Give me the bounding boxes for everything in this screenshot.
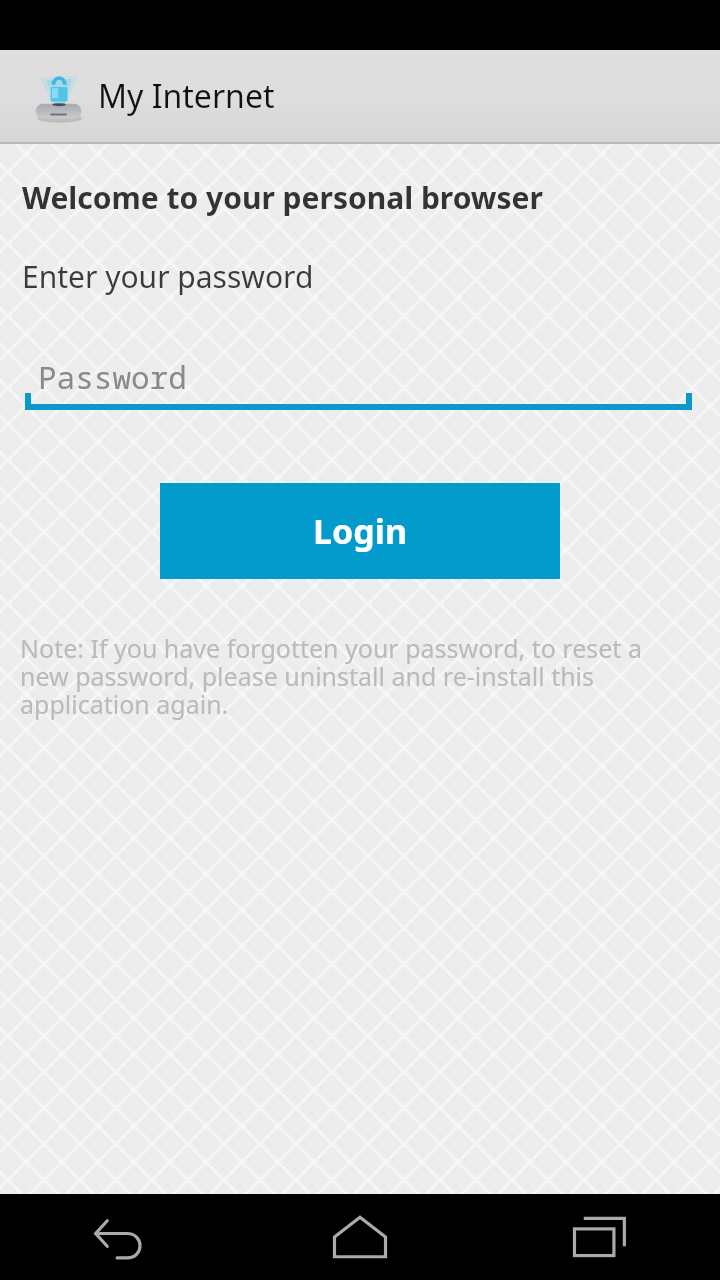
staticText: Password bbox=[38, 356, 187, 398]
staticText: Enter your password bbox=[22, 256, 314, 297]
button[interactable]: Home bbox=[240, 1194, 480, 1280]
staticText: Note: If you have forgotten your passwor… bbox=[20, 631, 642, 721]
staticText: Welcome to your personal browser bbox=[22, 177, 543, 218]
button[interactable]: Recent apps bbox=[480, 1194, 720, 1280]
staticText: Login bbox=[313, 508, 408, 554]
button[interactable]: Back bbox=[0, 1194, 240, 1280]
button[interactable]: Login bbox=[160, 483, 560, 579]
staticText: My Internet bbox=[98, 74, 275, 118]
button[interactable]: Password bbox=[0, 354, 720, 416]
